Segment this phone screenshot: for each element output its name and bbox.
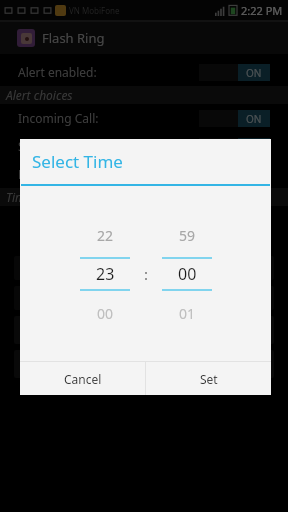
- staticText: 23: [96, 263, 115, 285]
- button[interactable]: SMS:: [0, 132, 288, 160]
- staticText: Duration: [24, 357, 66, 371]
- button[interactable]: Set: [146, 362, 271, 395]
- button[interactable]: Time picker column: [77, 222, 133, 326]
- staticText: 22: [97, 226, 114, 245]
- staticText: Incoming Call:: [18, 110, 99, 126]
- button[interactable]: Incoming Call:: [0, 104, 288, 132]
- button[interactable]: If enabled:: [0, 228, 288, 250]
- staticText: Alert choices: [6, 87, 73, 103]
- staticText: Flash Ring: [42, 29, 105, 47]
- button[interactable]: Alert enabled:: [0, 58, 288, 86]
- staticText: Cancel: [64, 371, 102, 387]
- staticText: Alert enabled:: [18, 64, 97, 80]
- staticText: :: [144, 264, 149, 284]
- staticText: SMS:: [18, 138, 46, 154]
- staticText: ON: [246, 112, 262, 126]
- button[interactable]: Notification:: [0, 160, 288, 188]
- staticText: Timing: [6, 189, 43, 205]
- staticText: Select Time: [32, 150, 123, 173]
- staticText: 00: [97, 304, 114, 323]
- button[interactable]: Active from:: [0, 206, 288, 228]
- button[interactable]: Duration: [14, 350, 274, 378]
- staticText: ON: [246, 66, 262, 80]
- staticText: 01: [179, 304, 196, 323]
- button[interactable]: Time picker column: [159, 222, 215, 326]
- button[interactable]: [14, 286, 274, 310]
- button[interactable]: [14, 256, 274, 280]
- staticText: Set: [200, 371, 218, 387]
- staticText: 2:22 PM: [241, 3, 283, 18]
- staticText: 00: [178, 263, 197, 285]
- staticText: Notification:: [18, 166, 87, 182]
- staticText: 59: [179, 226, 196, 245]
- button[interactable]: Cancel: [20, 362, 145, 395]
- staticText: VN MobiFone: [69, 5, 120, 16]
- button[interactable]: Flash rate: [14, 316, 274, 344]
